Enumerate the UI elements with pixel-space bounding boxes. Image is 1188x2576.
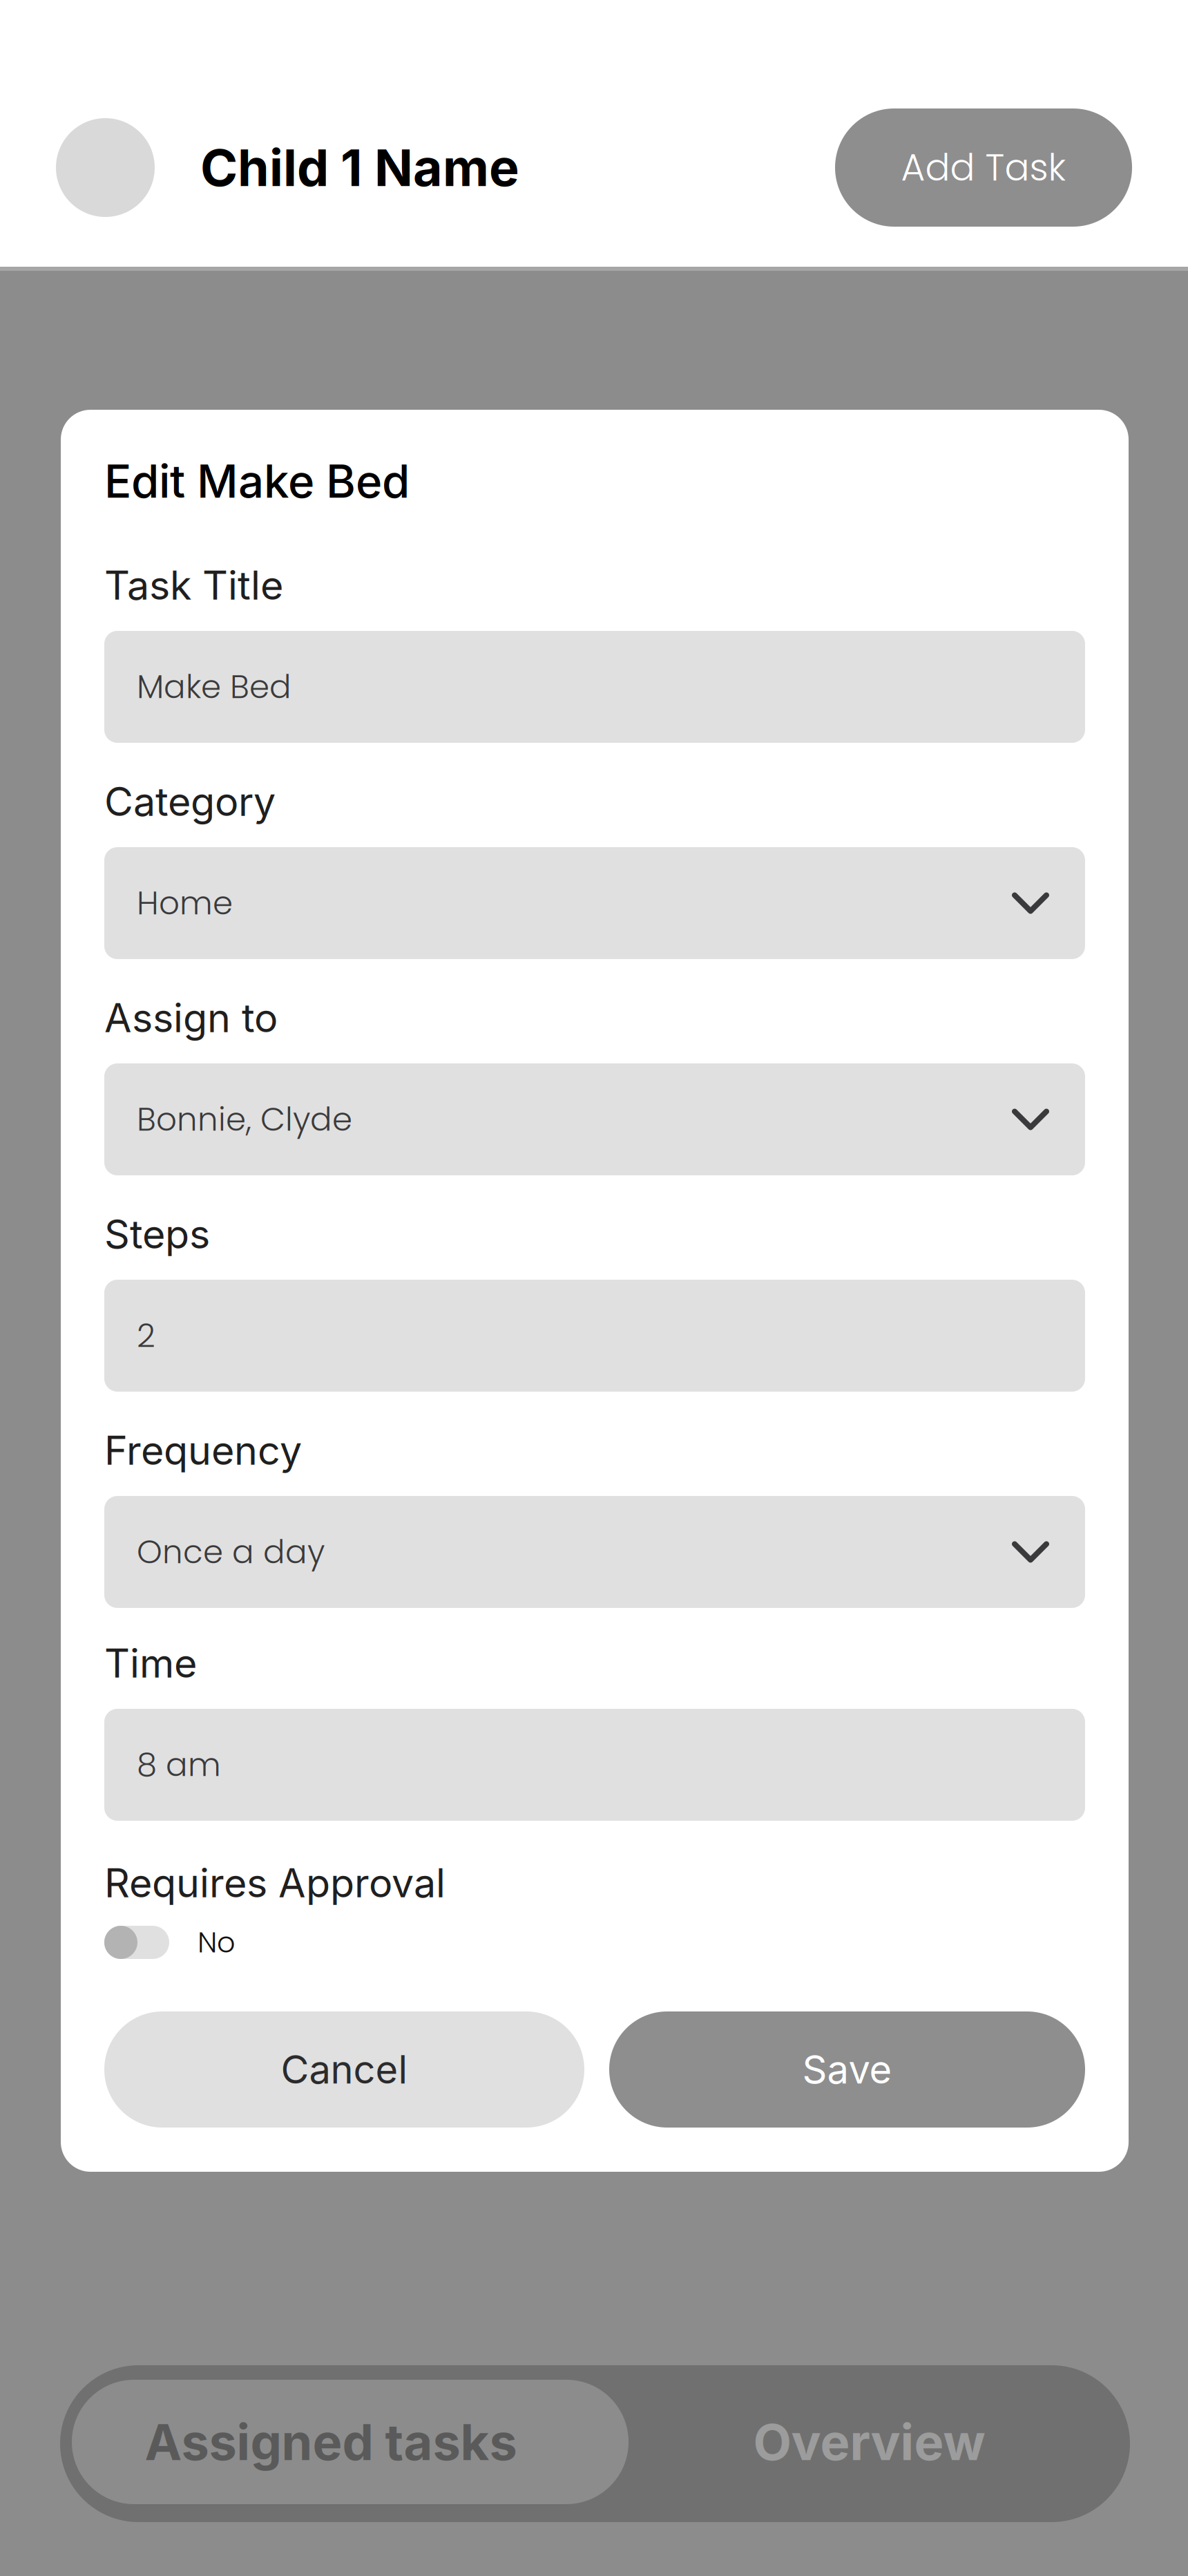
button[interactable]: No — [104, 1926, 1085, 1959]
staticText: Edit Make Bed — [104, 454, 410, 509]
staticText: Assign to — [104, 994, 278, 1042]
staticText: Add Task — [901, 142, 1066, 193]
staticText: Task Title — [104, 561, 283, 609]
button[interactable]: Save — [609, 2011, 1085, 2128]
staticText: 8 am — [137, 1742, 221, 1787]
staticText: Cancel — [281, 2046, 408, 2093]
button[interactable]: Overview — [626, 2380, 1112, 2504]
staticText: Make Bed — [137, 664, 291, 709]
button[interactable]: Home — [104, 847, 1085, 959]
button[interactable]: Cancel — [104, 2011, 584, 2128]
staticText: Bonnie, Clyde — [137, 1097, 352, 1142]
staticText: Steps — [104, 1210, 210, 1258]
staticText: 2 — [137, 1313, 155, 1358]
staticText: Home — [137, 881, 233, 926]
staticText: Time — [104, 1639, 197, 1687]
staticText: Assigned tasks — [145, 2412, 517, 2472]
staticText: Overview — [753, 2412, 985, 2472]
button[interactable]: Child avatar — [56, 118, 155, 217]
button[interactable]: Bonnie, Clyde — [104, 1063, 1085, 1175]
staticText: Frequency — [104, 1426, 302, 1474]
staticText: Requires Approval — [104, 1859, 445, 1907]
staticText: Once a day — [137, 1529, 325, 1574]
button[interactable]: Once a day — [104, 1496, 1085, 1608]
staticText: No — [198, 1922, 236, 1962]
staticText: Save — [802, 2046, 892, 2093]
button[interactable]: Assigned tasks — [72, 2380, 629, 2504]
staticText: Child 1 Name — [200, 137, 519, 198]
button[interactable]: Add Task — [835, 108, 1132, 227]
staticText: Category — [104, 778, 276, 826]
